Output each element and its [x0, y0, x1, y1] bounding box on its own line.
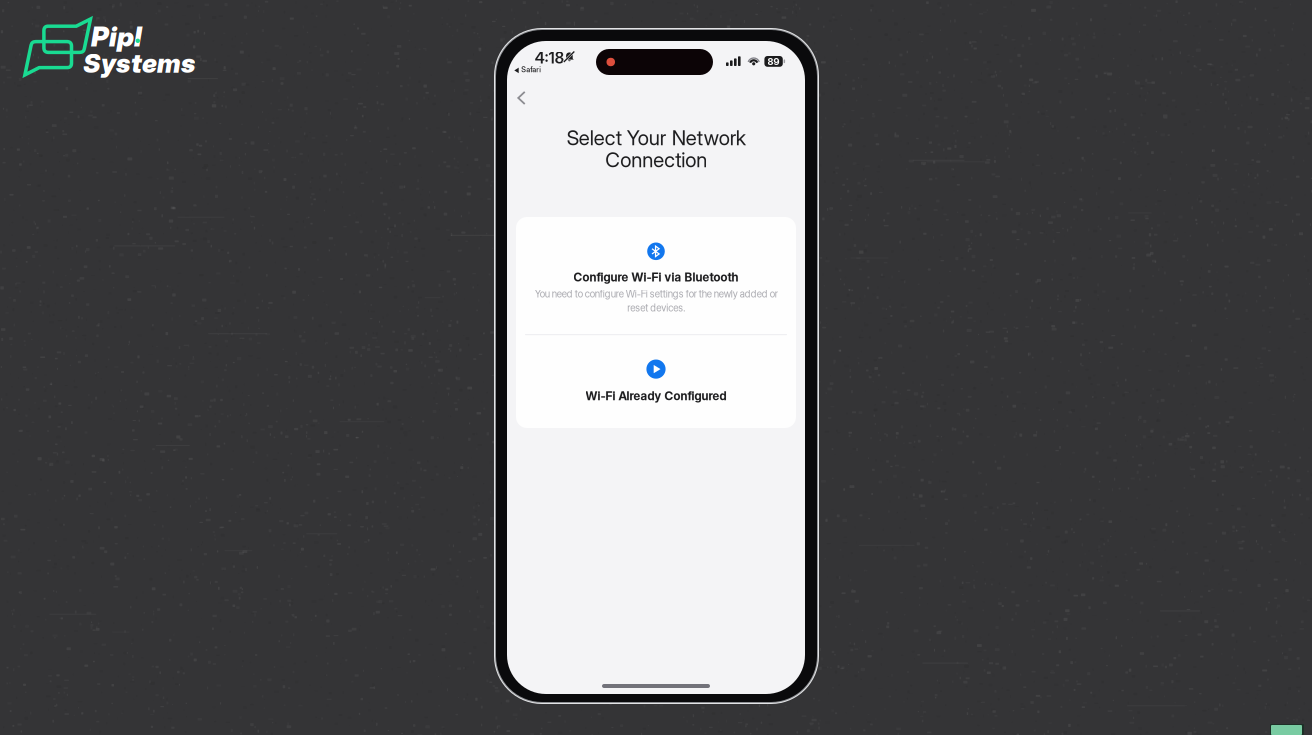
staticText: Configure Wi-Fi via Bluetooth [573, 270, 738, 284]
staticText: You need to configure Wi-Fi settings for… [534, 288, 777, 314]
button[interactable]: Wi-Fi Already Configured [516, 335, 796, 428]
staticText: Safari [521, 65, 541, 74]
button[interactable]: Configure Wi-Fi via Bluetooth [516, 217, 796, 334]
staticText: 89 [768, 56, 780, 67]
staticText: Wi-Fi Already Configured [585, 389, 726, 403]
staticText: Pipl [91, 20, 142, 53]
staticText: 4:18 [535, 49, 564, 67]
staticText: Systems [83, 48, 195, 79]
button[interactable]: Back [504, 81, 538, 115]
staticText: Select Your Network Connection [566, 125, 745, 172]
